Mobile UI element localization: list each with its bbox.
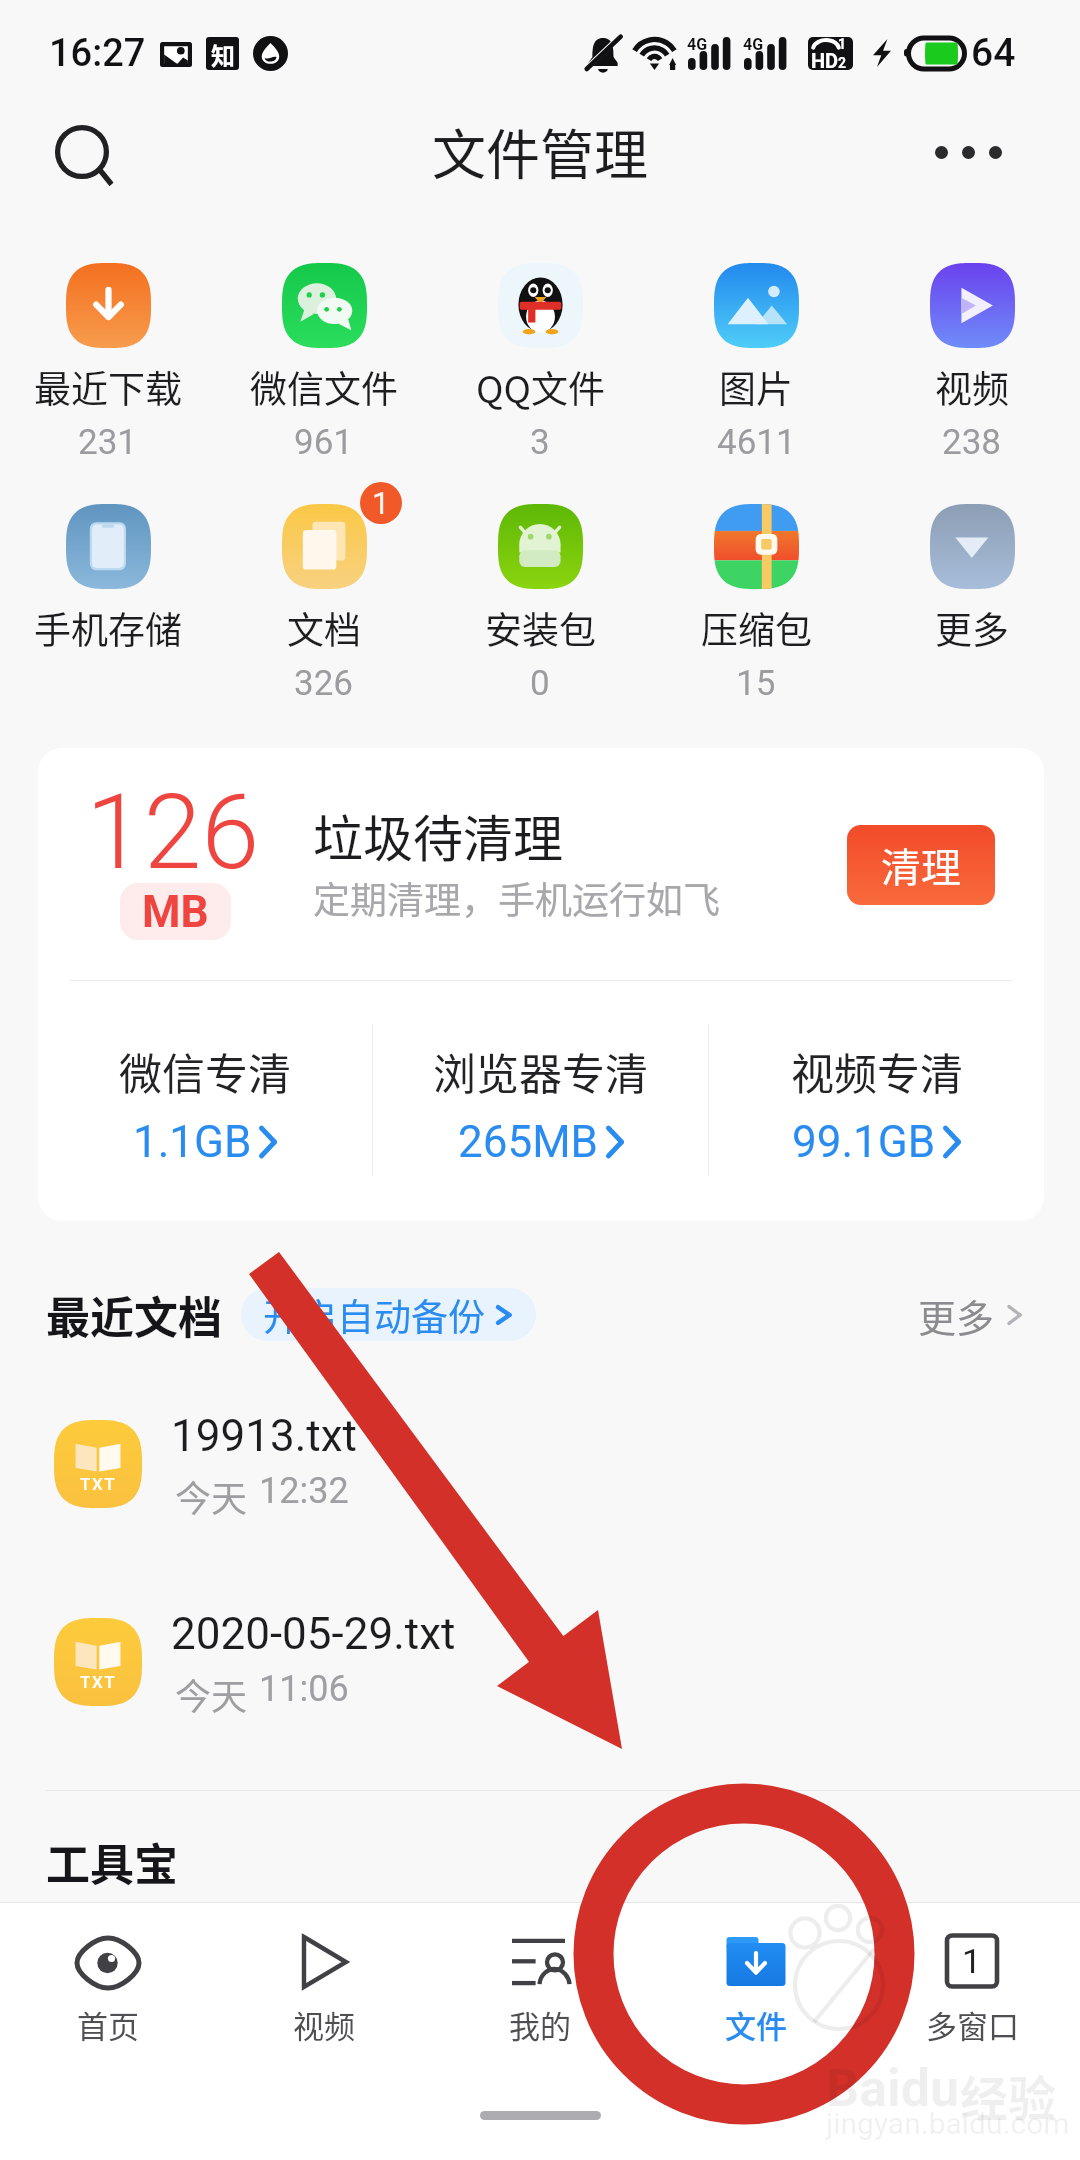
button[interactable]: 首页	[0, 1902, 216, 2015]
staticText: 15	[736, 663, 776, 704]
button[interactable]: 图片	[648, 262, 864, 463]
staticText: 图片	[719, 360, 793, 414]
staticText: 开启自动备份	[263, 1288, 485, 1341]
staticText: 4G	[743, 35, 764, 54]
staticText: 最近文档	[46, 1283, 222, 1347]
staticText: 99.1GB	[792, 1116, 936, 1168]
staticText: 知	[211, 37, 235, 70]
button[interactable]: 更多	[864, 503, 1080, 655]
staticText: 4611	[717, 422, 796, 463]
staticText: 19913.txt	[171, 1410, 357, 1462]
staticText: 安装包	[485, 601, 596, 655]
staticText: 更多	[935, 601, 1009, 655]
staticText: 经验	[960, 2060, 1057, 2130]
staticText: 文档	[287, 601, 361, 655]
staticText: 0	[530, 663, 550, 704]
staticText: 多窗口	[926, 2002, 1019, 2047]
button[interactable]: 视频	[864, 262, 1080, 463]
button[interactable]: 微信专清	[38, 998, 372, 1126]
staticText: QQ文件	[476, 360, 605, 414]
staticText: 238	[942, 422, 1002, 463]
staticText: 4G	[687, 35, 708, 54]
staticText: 垃圾待清理	[313, 799, 563, 871]
staticText: 首页	[77, 2002, 139, 2047]
staticText: 工具宝	[46, 1830, 178, 1894]
button[interactable]: 我的	[432, 1902, 648, 2015]
staticText: 326	[294, 663, 354, 704]
staticText: 今天	[175, 1470, 248, 1522]
staticText: 视频专清	[791, 1040, 963, 1102]
staticText: 1.1GB	[133, 1116, 252, 1168]
button[interactable]: 开启自动备份	[241, 1288, 536, 1341]
staticText: 微信专清	[119, 1040, 291, 1102]
button[interactable]: 微信文件	[216, 262, 432, 463]
staticText: 视频	[293, 2002, 355, 2047]
staticText: 今天	[175, 1668, 248, 1720]
staticText: 2020-05-29.txt	[171, 1608, 456, 1660]
button[interactable]: 视频专清	[709, 998, 1044, 1126]
staticText: 微信文件	[250, 360, 398, 414]
button[interactable]: 1	[216, 503, 432, 704]
button[interactable]: 浏览器专清	[373, 998, 708, 1126]
staticText: 1	[372, 485, 390, 521]
staticText: 视频	[935, 360, 1009, 414]
staticText: 清理	[881, 836, 961, 894]
staticText: jingyan.baidu.com	[826, 2106, 1070, 2141]
button[interactable]: 清理	[847, 825, 995, 905]
staticText: 12:32	[259, 1470, 349, 1512]
staticText: 文件	[725, 2002, 787, 2047]
staticText: 浏览器专清	[433, 1040, 648, 1102]
staticText: 126	[86, 772, 260, 894]
staticText: TXT	[80, 1672, 117, 1692]
staticText: 11:06	[259, 1668, 349, 1710]
button[interactable]: Search	[38, 108, 126, 196]
button[interactable]: More options	[930, 114, 1006, 190]
staticText: 压缩包	[701, 601, 812, 655]
button[interactable]: 文件	[648, 1902, 864, 2015]
staticText: 定期清理，手机运行如飞	[313, 871, 720, 925]
button[interactable]: 最近下载	[0, 262, 216, 463]
button[interactable]: TXT	[0, 1614, 1080, 1734]
button[interactable]: 安装包	[432, 503, 648, 704]
button[interactable]: 126	[38, 748, 1044, 1221]
staticText: 最近下载	[34, 360, 182, 414]
staticText: MB	[142, 886, 209, 938]
staticText: 更多	[918, 1288, 995, 1341]
staticText: Baidu	[826, 2058, 960, 2119]
staticText: HD	[811, 49, 839, 72]
staticText: 265MB	[458, 1116, 599, 1168]
button[interactable]: 视频	[216, 1902, 432, 2015]
button[interactable]: 手机存储	[0, 503, 216, 655]
button[interactable]: 1	[864, 1902, 1080, 2015]
button[interactable]: QQ文件	[432, 262, 648, 463]
staticText: 1	[962, 1941, 982, 1981]
staticText: 手机存储	[34, 601, 182, 655]
staticText: 64	[971, 30, 1016, 76]
staticText: 231	[78, 422, 138, 463]
staticText: 我的	[509, 2002, 571, 2047]
button[interactable]: 压缩包	[648, 503, 864, 704]
staticText: 1	[838, 36, 847, 52]
staticText: 16:27	[49, 31, 146, 76]
staticText: 文件管理	[432, 112, 648, 190]
staticText: 961	[294, 422, 354, 463]
staticText: 2	[838, 55, 847, 71]
staticText: TXT	[80, 1474, 117, 1494]
button[interactable]: 更多	[918, 1288, 1025, 1341]
button[interactable]: TXT	[0, 1416, 1080, 1536]
staticText: 3	[530, 422, 550, 463]
